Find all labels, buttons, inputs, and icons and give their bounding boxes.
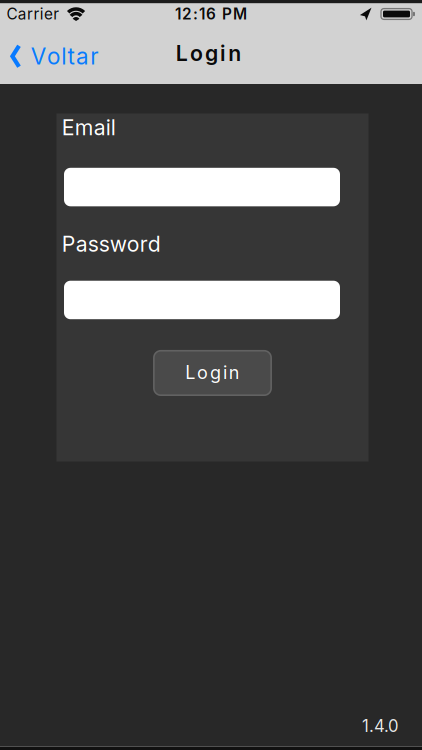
staticText: r bbox=[53, 5, 59, 23]
staticText: M bbox=[233, 5, 247, 23]
staticText: r bbox=[27, 5, 33, 23]
staticText: r bbox=[33, 5, 39, 23]
staticText: i bbox=[220, 40, 226, 66]
staticText: L bbox=[185, 361, 195, 383]
staticText: e bbox=[44, 5, 53, 23]
staticText: n bbox=[228, 40, 241, 66]
staticText: g bbox=[210, 361, 221, 383]
staticText: l bbox=[61, 42, 66, 70]
staticText: g bbox=[205, 40, 218, 66]
button[interactable]: Voltar bbox=[0, 41, 98, 69]
staticText: : bbox=[193, 5, 198, 23]
staticText: a bbox=[76, 42, 89, 70]
staticText: a bbox=[18, 5, 27, 23]
staticText: L bbox=[176, 40, 188, 66]
staticText: V bbox=[31, 42, 46, 70]
button[interactable]: Email bbox=[64, 168, 340, 206]
staticText: i bbox=[223, 361, 227, 383]
staticText: o bbox=[190, 40, 203, 66]
staticText: 1.4.0 bbox=[362, 716, 399, 736]
staticText: 2 bbox=[182, 5, 192, 23]
staticText: o bbox=[197, 361, 208, 383]
staticText: r bbox=[90, 42, 98, 70]
button[interactable]: L bbox=[154, 351, 271, 395]
staticText: i bbox=[40, 5, 44, 23]
staticText: P bbox=[222, 5, 232, 23]
staticText: n bbox=[229, 361, 240, 383]
staticText: 6 bbox=[206, 5, 216, 23]
staticText: Email bbox=[62, 115, 116, 140]
staticText: o bbox=[47, 42, 60, 70]
staticText: t bbox=[68, 42, 75, 70]
button[interactable]: Password bbox=[64, 281, 340, 319]
staticText: Password bbox=[62, 231, 161, 257]
staticText: C bbox=[6, 5, 17, 23]
staticText: 1 bbox=[199, 5, 205, 23]
staticText: 1 bbox=[175, 5, 181, 23]
